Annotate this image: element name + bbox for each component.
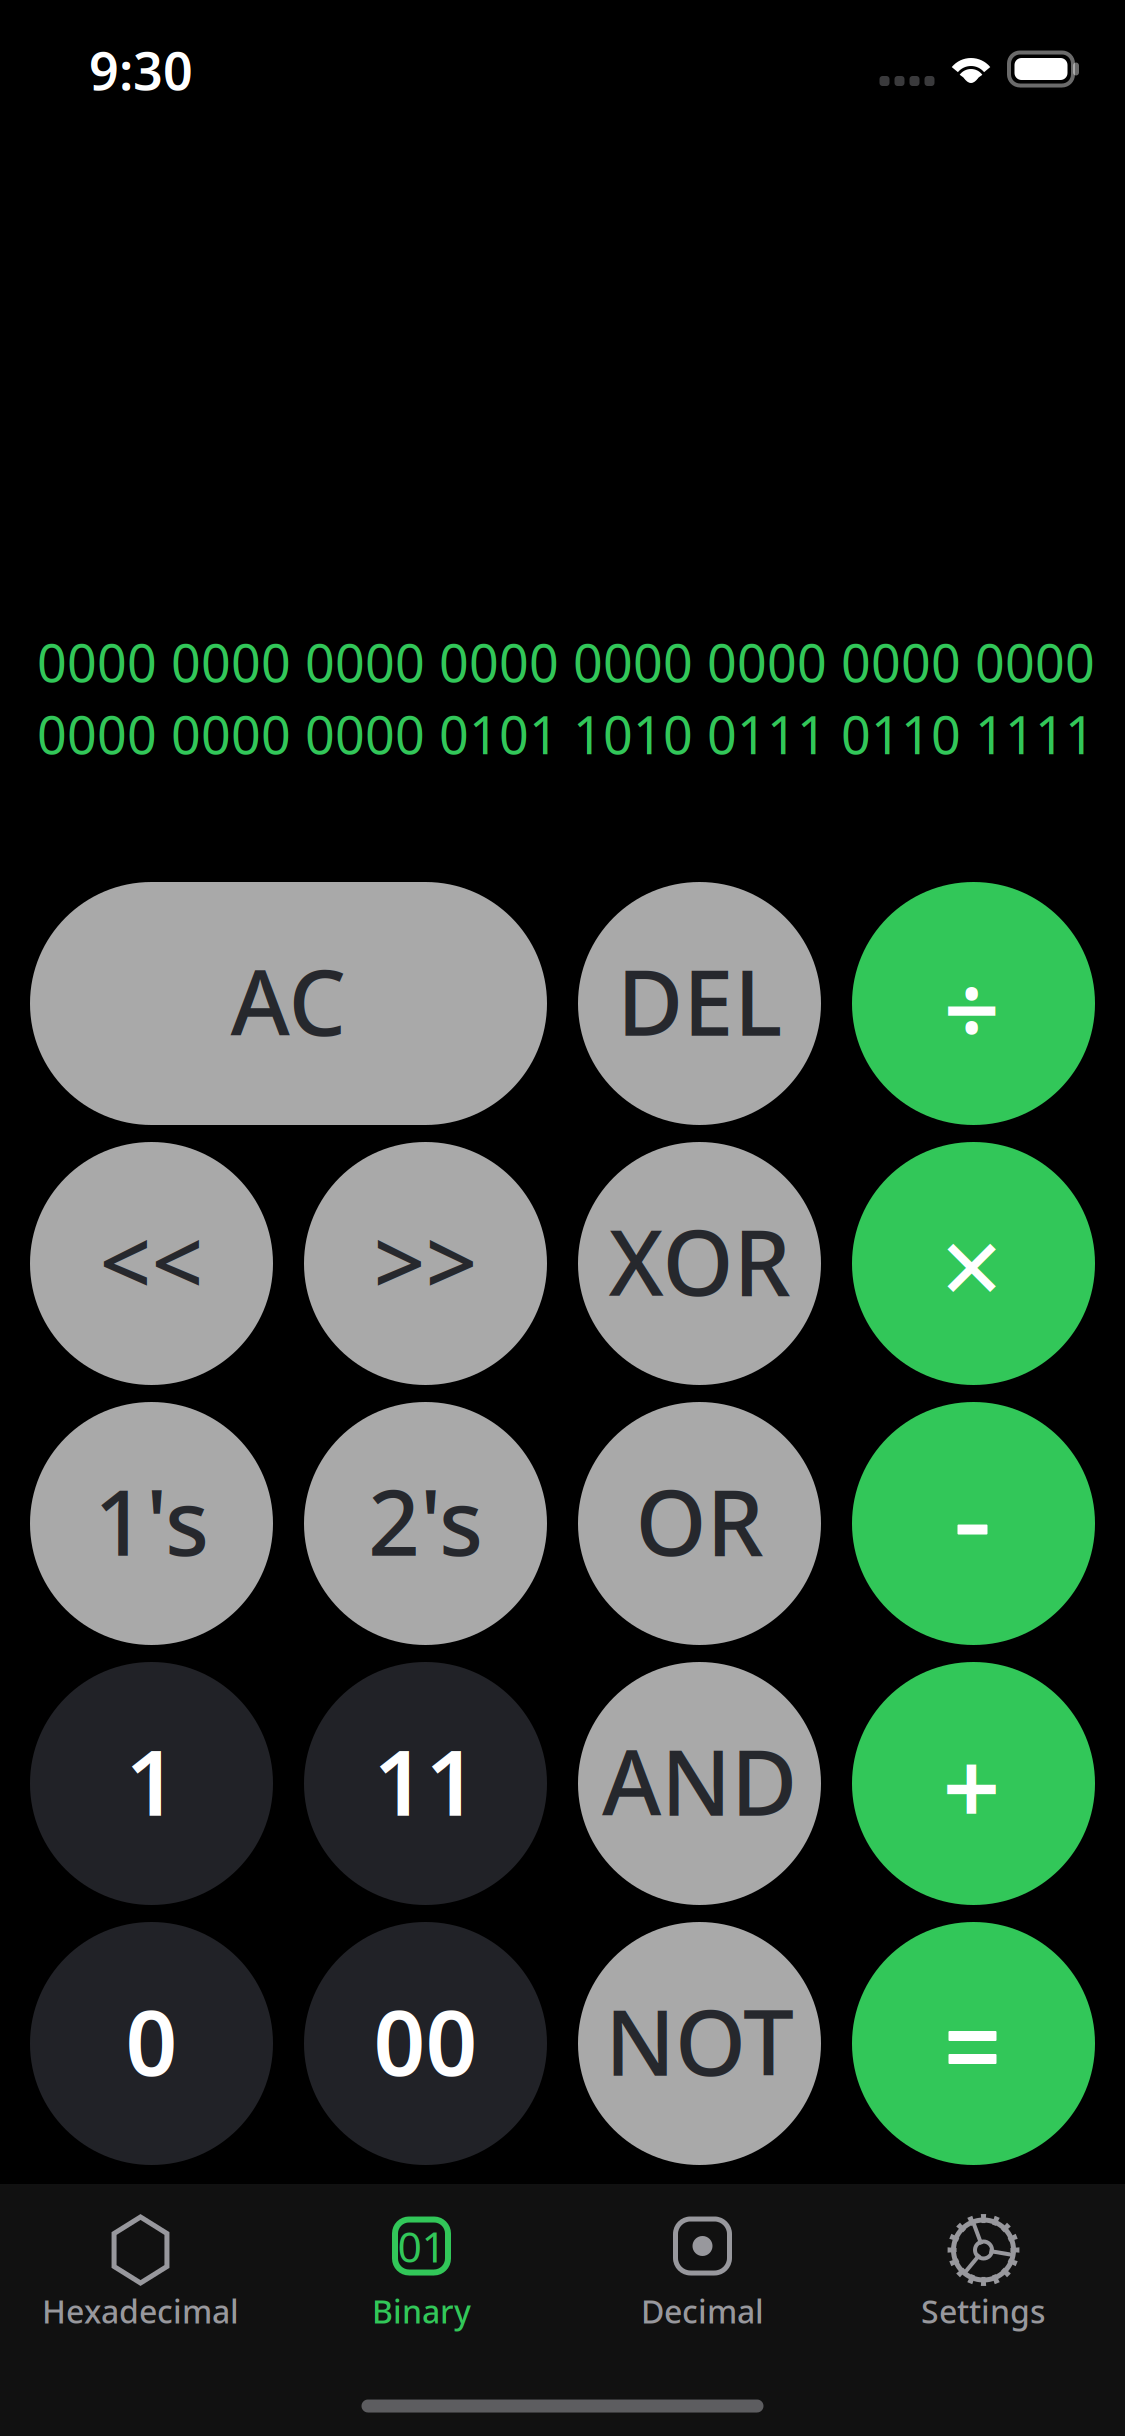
button[interactable]: Shift right: [304, 1142, 547, 1385]
staticText: ✕: [937, 1223, 1006, 1316]
staticText: 00: [373, 1980, 477, 2101]
button[interactable]: DEL: [578, 882, 821, 1125]
staticText: 0: [125, 1980, 177, 2101]
staticText: 01: [397, 2218, 445, 2274]
staticText: 0000 0000 0000 0000 0000 0000 0000 0000: [37, 627, 1095, 697]
button[interactable]: NOT: [578, 1922, 821, 2165]
staticText: 1's: [94, 1460, 209, 1581]
staticText: 0000 0000 0000 0101 1010 0111 0110 1111: [37, 699, 1095, 769]
button[interactable]: Settings: [843, 2184, 1124, 2324]
staticText: Binary: [372, 2290, 471, 2332]
button[interactable]: Subtract: [852, 1402, 1095, 1645]
staticText: 1: [125, 1720, 177, 1841]
staticText: AND: [602, 1720, 797, 1841]
staticText: 9:30: [89, 35, 193, 105]
button[interactable]: Add: [852, 1662, 1095, 1905]
staticText: OR: [635, 1460, 763, 1581]
button[interactable]: 11: [304, 1662, 547, 1905]
button[interactable]: 2's: [304, 1402, 547, 1645]
staticText: <<: [99, 1200, 203, 1321]
button[interactable]: OR: [578, 1402, 821, 1645]
staticText: ÷: [943, 942, 999, 1073]
button[interactable]: AND: [578, 1662, 821, 1905]
staticText: >>: [373, 1200, 477, 1321]
staticText: XOR: [608, 1200, 790, 1321]
staticText: DEL: [617, 940, 782, 1061]
button[interactable]: Hexadecimal: [0, 2184, 281, 2324]
staticText: Settings: [921, 2290, 1046, 2332]
staticText: AC: [230, 940, 346, 1061]
button[interactable]: 0: [30, 1922, 273, 2165]
button[interactable]: Shift left: [30, 1142, 273, 1385]
staticText: Decimal: [641, 2290, 764, 2332]
staticText: NOT: [605, 1980, 794, 2101]
button[interactable]: Equals: [852, 1922, 1095, 2165]
staticText: 11: [373, 1720, 477, 1841]
button[interactable]: XOR: [578, 1142, 821, 1385]
staticText: Hexadecimal: [42, 2290, 239, 2332]
button[interactable]: Decimal: [562, 2184, 843, 2324]
button[interactable]: 01: [281, 2184, 562, 2324]
button[interactable]: 1's: [30, 1402, 273, 1645]
staticText: 2's: [368, 1460, 483, 1581]
button[interactable]: 00: [304, 1922, 547, 2165]
button[interactable]: 1: [30, 1662, 273, 1905]
button[interactable]: AC: [30, 882, 547, 1125]
button[interactable]: Multiply: [852, 1142, 1095, 1385]
button[interactable]: Divide: [852, 882, 1095, 1125]
staticText: +: [942, 1718, 1000, 1853]
